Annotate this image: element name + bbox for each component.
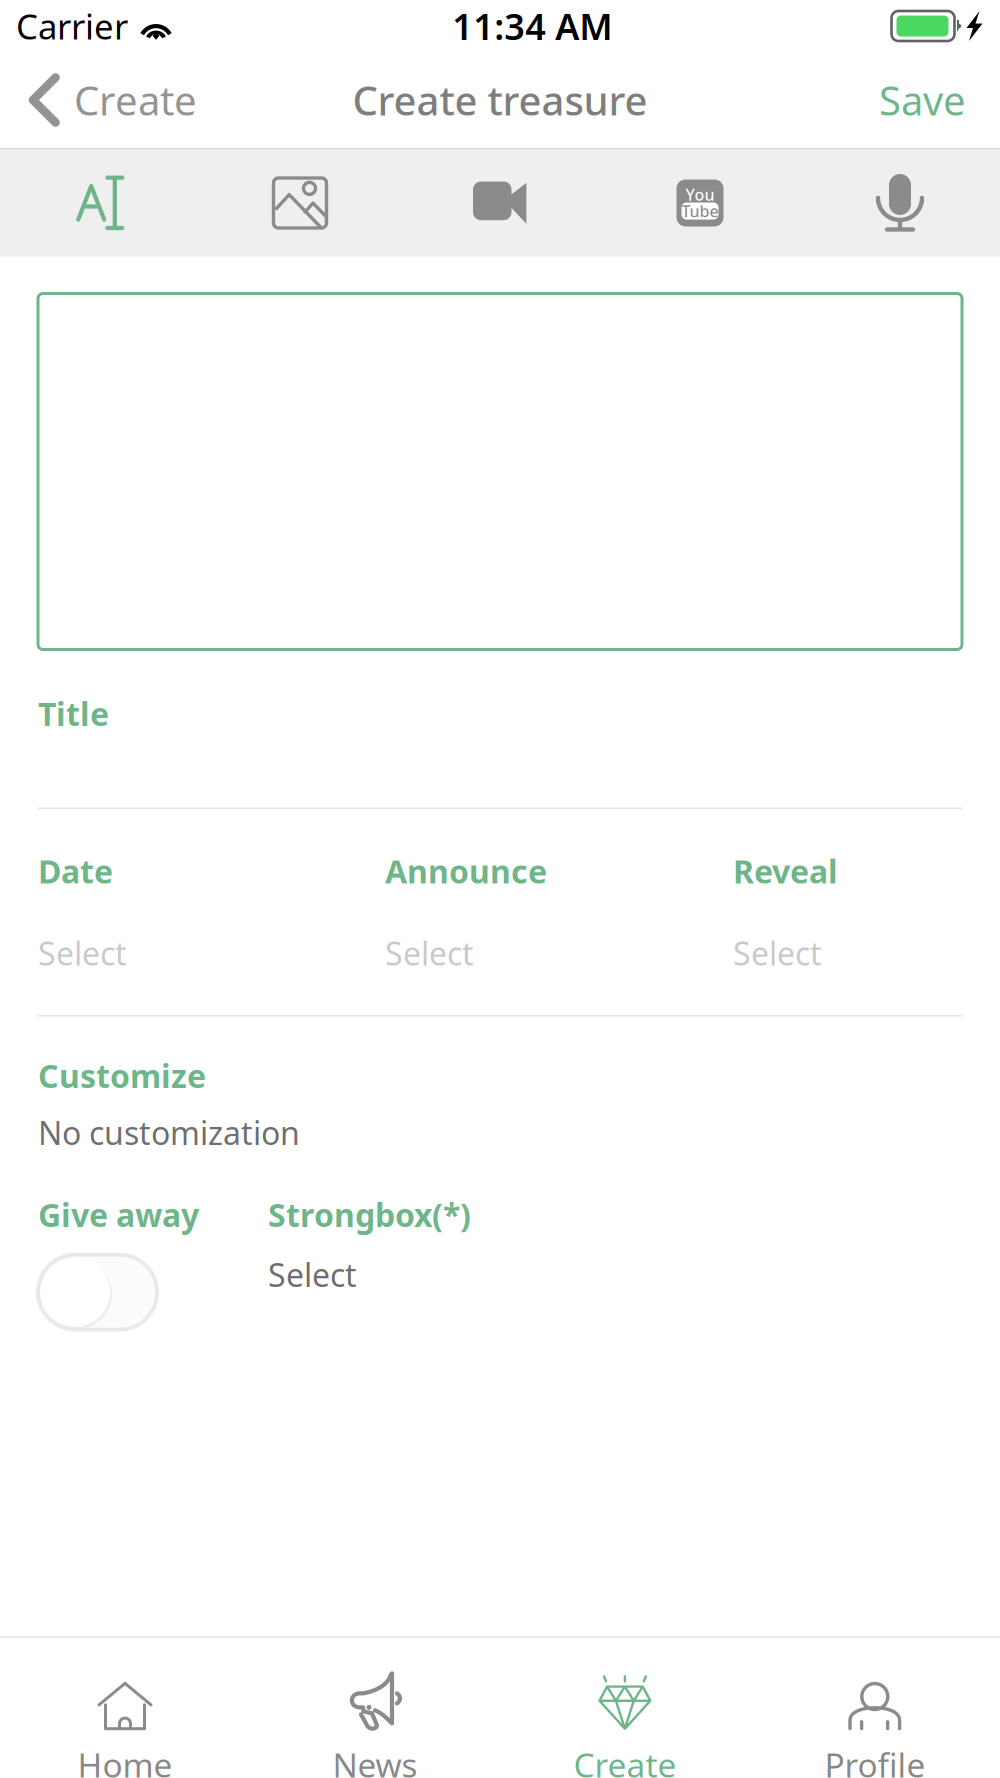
staticText: Select xyxy=(38,932,127,974)
button[interactable]: Give away xyxy=(38,1255,157,1330)
staticText: Give away xyxy=(38,1193,199,1236)
button[interactable]: Create xyxy=(500,1625,750,1778)
staticText: Strongbox(*) xyxy=(268,1193,471,1236)
button[interactable]: Photo xyxy=(200,149,400,256)
button[interactable]: YouTube xyxy=(600,149,800,256)
staticText: Create xyxy=(74,73,197,126)
button[interactable]: Video xyxy=(400,149,600,256)
staticText: Save xyxy=(879,73,966,126)
button[interactable]: Date xyxy=(38,854,385,970)
button[interactable]: Profile xyxy=(750,1625,1000,1778)
button[interactable]: Text xyxy=(0,149,200,256)
button[interactable]: Reveal xyxy=(733,854,962,970)
button[interactable]: Home xyxy=(0,1625,250,1778)
staticText: Profile xyxy=(824,1742,925,1778)
button[interactable]: Create xyxy=(0,52,217,148)
staticText: No customization xyxy=(38,1111,300,1154)
staticText: Title xyxy=(38,692,109,735)
button[interactable]: Announce xyxy=(385,854,733,970)
staticText: Carrier xyxy=(16,3,128,49)
staticText: Reveal xyxy=(733,850,838,892)
staticText: 11:34 AM xyxy=(452,2,612,50)
staticText: News xyxy=(332,1742,417,1778)
staticText: You xyxy=(685,184,714,205)
staticText: Tube xyxy=(681,200,718,222)
staticText: Create xyxy=(573,1742,676,1778)
staticText: Customize xyxy=(38,1054,206,1097)
button[interactable]: Audio xyxy=(800,149,1000,256)
staticText: Select xyxy=(268,1253,357,1296)
staticText: Select xyxy=(385,932,474,974)
staticText: Announce xyxy=(385,850,547,892)
button[interactable]: Save xyxy=(845,52,1000,148)
button[interactable]: News xyxy=(250,1625,500,1778)
staticText: Date xyxy=(38,850,113,892)
button[interactable]: Select xyxy=(268,1232,357,1292)
staticText: Create treasure xyxy=(352,73,647,126)
staticText: Select xyxy=(733,932,822,974)
staticText: Home xyxy=(77,1742,172,1778)
